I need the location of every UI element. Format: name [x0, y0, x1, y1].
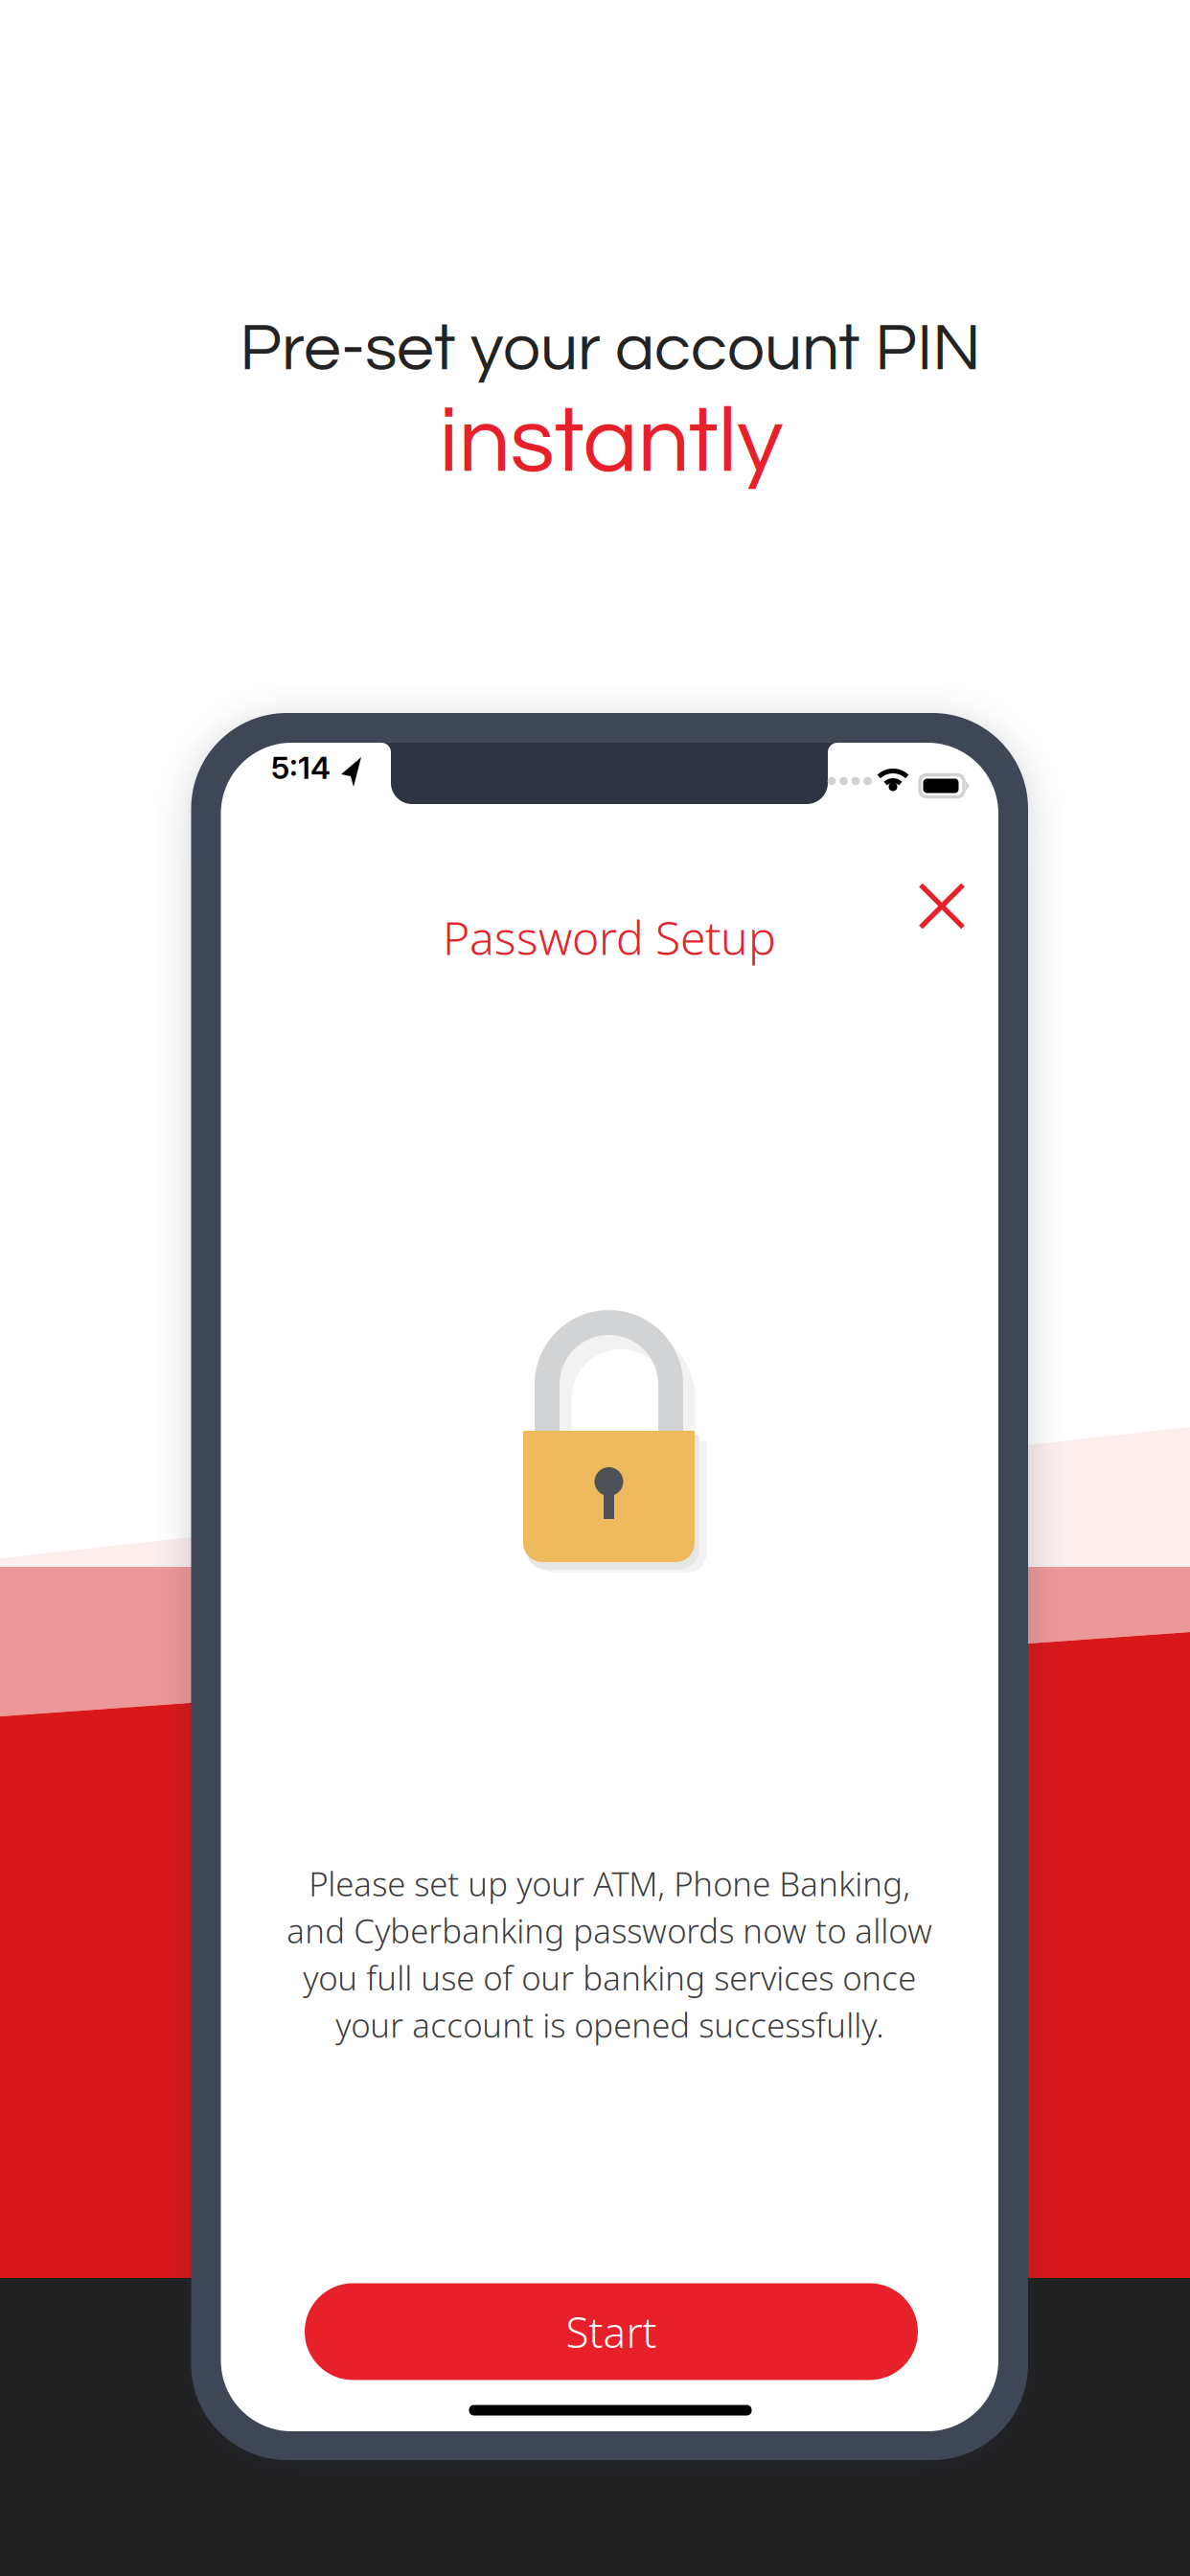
- staticText: Start: [566, 2303, 657, 2360]
- staticText: 5:14: [271, 749, 331, 786]
- staticText: Please set up your ATM, Phone Banking, a…: [286, 1861, 932, 2047]
- staticText: Password Setup: [443, 906, 776, 969]
- staticText: instantly: [439, 395, 783, 490]
- staticText: Pre-set your account PIN: [240, 315, 981, 383]
- button[interactable]: Close: [0, 0, 1190, 2576]
- button[interactable]: Start: [305, 2283, 918, 2380]
